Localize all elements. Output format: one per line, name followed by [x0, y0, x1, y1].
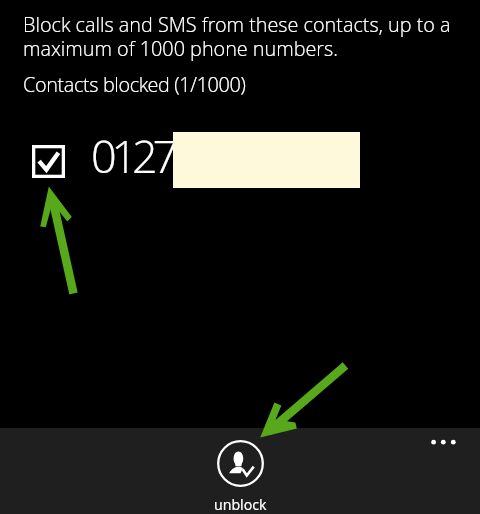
staticText: Block calls and SMS from these contacts,… — [23, 11, 460, 62]
button[interactable]: More options — [420, 429, 468, 477]
button[interactable]: unblock — [205, 428, 275, 514]
staticText: Contacts blocked (1/1000) — [23, 71, 246, 98]
button[interactable]: 0127 — [0, 124, 480, 196]
staticText: unblock — [214, 495, 267, 514]
staticText: 0127 — [91, 125, 174, 186]
